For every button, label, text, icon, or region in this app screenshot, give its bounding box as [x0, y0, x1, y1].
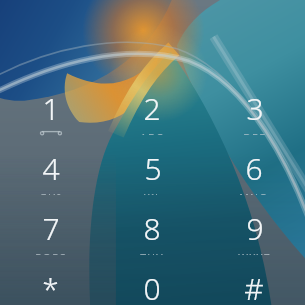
staticText: DEF — [243, 131, 266, 135]
staticText: WXYZ — [238, 251, 271, 255]
staticText: 9 — [246, 208, 264, 249]
staticText: PQRS — [35, 251, 67, 255]
button[interactable]: Key * — [0, 268, 101, 305]
staticText: 1 — [42, 88, 60, 129]
staticText: 2 — [143, 88, 161, 129]
button[interactable]: 1 — [0, 88, 101, 135]
staticText: 8 — [143, 208, 161, 249]
button[interactable]: 8 — [101, 208, 203, 255]
staticText: 5 — [144, 148, 162, 189]
staticText: 4 — [42, 148, 60, 189]
staticText: 6 — [245, 148, 263, 189]
button[interactable]: 7 — [0, 208, 101, 255]
staticText: JKL — [143, 191, 162, 195]
button[interactable]: 0 — [101, 268, 203, 305]
button[interactable]: 6 — [203, 148, 305, 195]
button[interactable]: 2 — [101, 88, 203, 135]
button[interactable]: Key # — [203, 268, 305, 305]
button[interactable]: 3 — [203, 88, 305, 135]
button[interactable]: 9 — [203, 208, 305, 255]
staticText: MNO — [239, 191, 269, 195]
button[interactable]: 5 — [101, 148, 203, 195]
staticText: # — [244, 268, 264, 305]
button[interactable]: 4 — [0, 148, 101, 195]
staticText: 7 — [42, 208, 60, 249]
staticText: 3 — [246, 88, 264, 129]
staticText: * — [42, 268, 59, 305]
staticText: GHI — [39, 191, 62, 195]
staticText: ABC — [140, 131, 164, 135]
staticText: TUV — [140, 251, 164, 255]
staticText: 0 — [143, 268, 161, 305]
